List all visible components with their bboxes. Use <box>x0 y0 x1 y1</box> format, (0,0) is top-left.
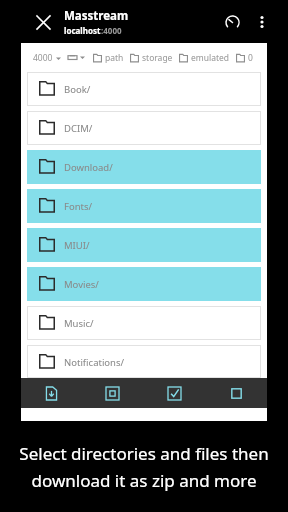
button[interactable]: Notifications/ <box>27 345 261 378</box>
button[interactable]: 0 <box>236 52 253 64</box>
staticText: 0 <box>248 52 253 64</box>
staticText: path <box>105 52 124 64</box>
button[interactable]: Fonts/ <box>27 189 261 223</box>
staticText: localhost <box>64 25 101 36</box>
staticText: 4000 <box>33 52 53 64</box>
button[interactable]: Book/ <box>27 72 261 106</box>
button[interactable]: Select all <box>143 378 205 408</box>
staticText: download it as zip and more <box>31 469 257 492</box>
staticText: Book/ <box>64 83 91 96</box>
button[interactable]: emulated <box>179 52 230 64</box>
staticText: DCIM/ <box>64 122 93 135</box>
button[interactable]: Download/ <box>27 150 261 184</box>
staticText: MIUI/ <box>64 239 90 252</box>
staticText: Download/ <box>64 161 113 174</box>
button[interactable]: Music/ <box>27 306 261 340</box>
button[interactable]: 4000 <box>33 52 61 64</box>
button[interactable]: Download file <box>21 378 82 408</box>
button[interactable]: Deselect all <box>205 378 267 408</box>
staticText: Masstream <box>64 8 129 24</box>
button[interactable]: Download zip <box>82 378 143 408</box>
staticText: Movies/ <box>64 278 99 291</box>
staticText: storage <box>142 52 173 64</box>
button[interactable]: Movies/ <box>27 267 261 301</box>
staticText: Select directories and files then <box>19 442 269 465</box>
button[interactable]: Close <box>30 9 56 35</box>
button[interactable]: Speed <box>218 8 246 36</box>
staticText: :4000 <box>101 25 122 36</box>
button[interactable]: More options <box>248 8 276 36</box>
button[interactable]: Server <box>68 53 85 62</box>
button[interactable]: DCIM/ <box>27 111 261 145</box>
button[interactable]: storage <box>130 52 173 64</box>
staticText: emulated <box>191 52 230 64</box>
staticText: Notifications/ <box>64 356 125 369</box>
staticText: Fonts/ <box>64 200 93 213</box>
button[interactable]: MIUI/ <box>27 228 261 262</box>
staticText: Music/ <box>64 317 94 330</box>
button[interactable]: path <box>93 52 124 64</box>
